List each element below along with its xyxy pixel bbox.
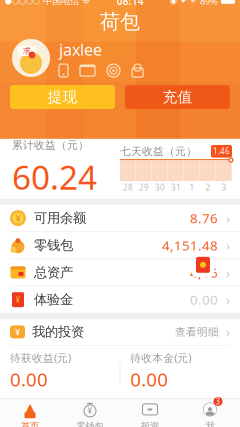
button[interactable]: 零钱包 xyxy=(0,232,240,258)
button[interactable]: 充值 xyxy=(125,85,230,109)
staticText: ¥ xyxy=(15,212,20,224)
staticText: 待收本金(元) xyxy=(130,351,191,365)
button[interactable]: 投资 xyxy=(120,399,180,427)
staticText: 体验金 xyxy=(34,291,73,308)
staticText: 2 xyxy=(205,182,210,193)
button[interactable]: 总资产 xyxy=(0,259,240,286)
staticText: jaxlee xyxy=(59,39,102,60)
staticText: 可用余额 xyxy=(34,210,86,226)
staticText: › xyxy=(226,264,230,281)
button[interactable]: 红包 xyxy=(192,253,214,285)
staticText: 1.46 xyxy=(213,146,230,157)
staticText: 求 xyxy=(23,46,31,56)
staticText: 31 xyxy=(171,182,181,193)
staticText: ¥ xyxy=(15,326,20,338)
staticText: 30 xyxy=(155,182,165,193)
staticText: 3 xyxy=(221,182,226,193)
button[interactable]: 3 xyxy=(180,399,240,427)
staticText: ▲ xyxy=(25,401,34,414)
staticText: 60.24 xyxy=(12,155,97,199)
staticText: 总资产 xyxy=(34,264,73,281)
staticText: 我的投资 xyxy=(32,324,84,340)
staticText: 中国电信 xyxy=(43,0,79,7)
staticText: ¥ xyxy=(15,294,20,305)
staticText: 8.76 xyxy=(190,209,218,227)
button[interactable]: 提现 xyxy=(10,85,115,109)
staticText: 我 xyxy=(205,420,214,427)
staticText: ❊ xyxy=(82,0,90,6)
staticText: › xyxy=(226,291,230,308)
staticText: 0.00 xyxy=(10,367,48,392)
staticText: 4,151.48 xyxy=(162,236,218,254)
button[interactable]: 手机 xyxy=(59,64,68,77)
staticText: › xyxy=(226,323,230,341)
staticText: › xyxy=(226,209,230,227)
button[interactable]: ¥ xyxy=(0,319,240,345)
staticText: 零钱包 xyxy=(34,237,73,253)
staticText: 提现 xyxy=(47,88,77,106)
staticText: ●○○○○ xyxy=(5,0,40,5)
staticText: 累计收益（元） xyxy=(12,139,89,152)
button[interactable]: 银行卡 xyxy=(80,65,95,76)
button[interactable]: ▲ xyxy=(0,399,60,427)
staticText: 0.00 xyxy=(130,367,168,392)
staticText: ▾ xyxy=(200,273,205,285)
button[interactable]: 指纹 xyxy=(107,64,120,77)
staticText: 29 xyxy=(139,182,149,193)
staticText: › xyxy=(226,236,230,254)
staticText: 充值 xyxy=(162,88,192,106)
staticText: 零钱包 xyxy=(76,420,103,427)
staticText: 0.00 xyxy=(190,291,218,308)
staticText: 28 xyxy=(123,182,133,193)
staticText: ◉ ✦ ✳ xyxy=(170,0,197,5)
staticText: 4,16 xyxy=(190,264,218,281)
button[interactable]: ¥ xyxy=(60,399,120,427)
staticText: 待获收益(元) xyxy=(10,351,71,365)
staticText: 荷包 xyxy=(100,9,140,34)
staticText: ¥ xyxy=(87,406,92,416)
staticText: 投资 xyxy=(141,420,159,427)
button[interactable]: 锁定 xyxy=(132,64,143,77)
staticText: 首页 xyxy=(21,420,39,427)
button[interactable]: ¥ xyxy=(0,205,240,231)
staticText: 3 xyxy=(215,396,220,407)
staticText: 89% xyxy=(200,0,218,7)
staticText: 查看明细 xyxy=(175,325,219,338)
staticText: 七天收益（元） xyxy=(120,145,197,158)
staticText: 1 xyxy=(189,182,194,193)
button[interactable]: ¥ xyxy=(0,286,240,313)
staticText: 08:14 xyxy=(116,0,143,8)
